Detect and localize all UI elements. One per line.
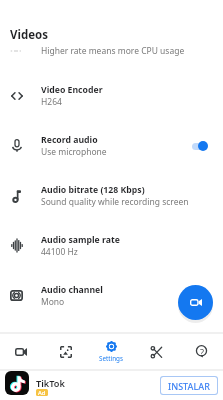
staticText: Settings (99, 354, 123, 363)
button[interactable]: Help (180, 334, 222, 369)
button[interactable]: Settings (90, 334, 132, 369)
staticText: Audio sample rate (41, 234, 120, 246)
staticText: Record audio (41, 134, 98, 146)
button[interactable]: Screenshot (45, 334, 87, 369)
staticText: Use microphone (41, 146, 107, 158)
staticText: Video Encoder (41, 84, 103, 96)
button[interactable]: Trim (135, 334, 177, 369)
staticText: INSTALAR (168, 380, 210, 392)
button[interactable]: Record audio toggle (189, 135, 215, 155)
button[interactable]: Audio channel (0, 270, 223, 320)
staticText: Audio bitrate (128 Kbps) (41, 184, 145, 196)
button[interactable]: Record (0, 334, 42, 369)
button[interactable]: Audio sample rate (0, 220, 223, 270)
staticText: 44100 Hz (41, 246, 78, 258)
button[interactable]: TikTok ad (5, 371, 29, 395)
button[interactable]: Audio bitrate (128 Kbps) (0, 170, 223, 220)
button[interactable]: Record audio (0, 120, 223, 170)
staticText: Sound quality while recording screen (41, 196, 189, 208)
staticText: TikTok (36, 377, 65, 390)
staticText: H264 (41, 96, 62, 108)
button[interactable]: Higher rate means more CPU usage (0, 30, 223, 56)
button[interactable]: INSTALAR (161, 377, 217, 394)
button[interactable]: Record video (178, 285, 213, 320)
staticText: ? (200, 346, 204, 359)
staticText: Videos (10, 27, 49, 43)
staticText: Higher rate means more CPU usage (41, 45, 185, 57)
staticText: Ad (38, 389, 46, 396)
staticText: Mono (41, 296, 65, 308)
staticText: Audio channel (41, 284, 103, 296)
button[interactable]: Video Encoder (0, 70, 223, 120)
